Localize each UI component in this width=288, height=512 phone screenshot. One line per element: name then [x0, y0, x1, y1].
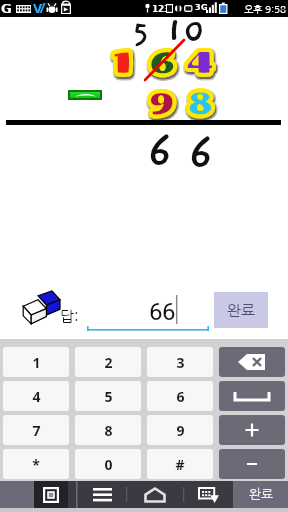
button[interactable]: Backspace [219, 347, 285, 377]
button[interactable]: Recent apps [34, 481, 68, 508]
button[interactable] [233, 481, 288, 508]
staticText: 3 [176, 353, 185, 372]
staticText: 6 [176, 387, 185, 406]
button[interactable]: 7 [3, 415, 69, 445]
button[interactable]: Space [219, 381, 285, 411]
staticText: # [175, 455, 185, 474]
button[interactable] [214, 292, 268, 328]
button[interactable]: 1 [3, 347, 69, 377]
staticText: 2 [104, 353, 113, 372]
button[interactable]: Menu [78, 481, 126, 508]
staticText: 1 [32, 353, 41, 372]
button[interactable]: Plus [219, 415, 285, 445]
button[interactable]: Home [127, 481, 183, 508]
button[interactable]: Hide keyboard [184, 481, 233, 508]
staticText: 8 [104, 421, 113, 440]
button[interactable]: Eraser [20, 287, 60, 327]
staticText: 0 [104, 455, 113, 474]
button[interactable]: 6 [147, 381, 213, 411]
staticText: * [32, 455, 40, 474]
button[interactable]: 5 [75, 381, 141, 411]
button[interactable] [87, 289, 209, 331]
staticText: 9 [176, 421, 185, 440]
button[interactable]: 9 [147, 415, 213, 445]
button[interactable]: 2 [75, 347, 141, 377]
button[interactable] [60, 303, 84, 329]
button[interactable]: 0 [75, 449, 141, 479]
button[interactable]: 3 [147, 347, 213, 377]
button[interactable]: # [147, 449, 213, 479]
staticText: 4 [32, 387, 41, 406]
button[interactable]: * [3, 449, 69, 479]
staticText: 5 [104, 387, 113, 406]
button[interactable]: Minus [219, 449, 285, 479]
button[interactable]: 4 [3, 381, 69, 411]
button[interactable]: 8 [75, 415, 141, 445]
staticText: 7 [32, 421, 41, 440]
